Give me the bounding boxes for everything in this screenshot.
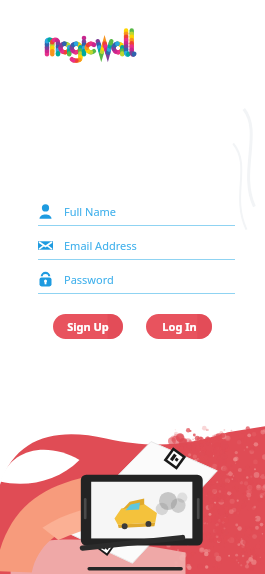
other: Password <box>38 272 53 287</box>
button[interactable]: Email address <box>38 238 235 260</box>
other: Full name <box>38 204 53 219</box>
button[interactable]: Full name <box>38 204 235 226</box>
staticText: Log In <box>162 319 197 334</box>
staticText: Password <box>64 272 114 287</box>
other: Email address <box>38 238 53 253</box>
button[interactable]: Log In <box>146 314 212 339</box>
button[interactable]: Password <box>38 272 235 294</box>
staticText: Email Address <box>64 238 137 253</box>
staticText: Full Name <box>64 204 117 219</box>
staticText: Sign Up <box>67 319 109 334</box>
button[interactable]: Sign Up <box>53 314 123 339</box>
